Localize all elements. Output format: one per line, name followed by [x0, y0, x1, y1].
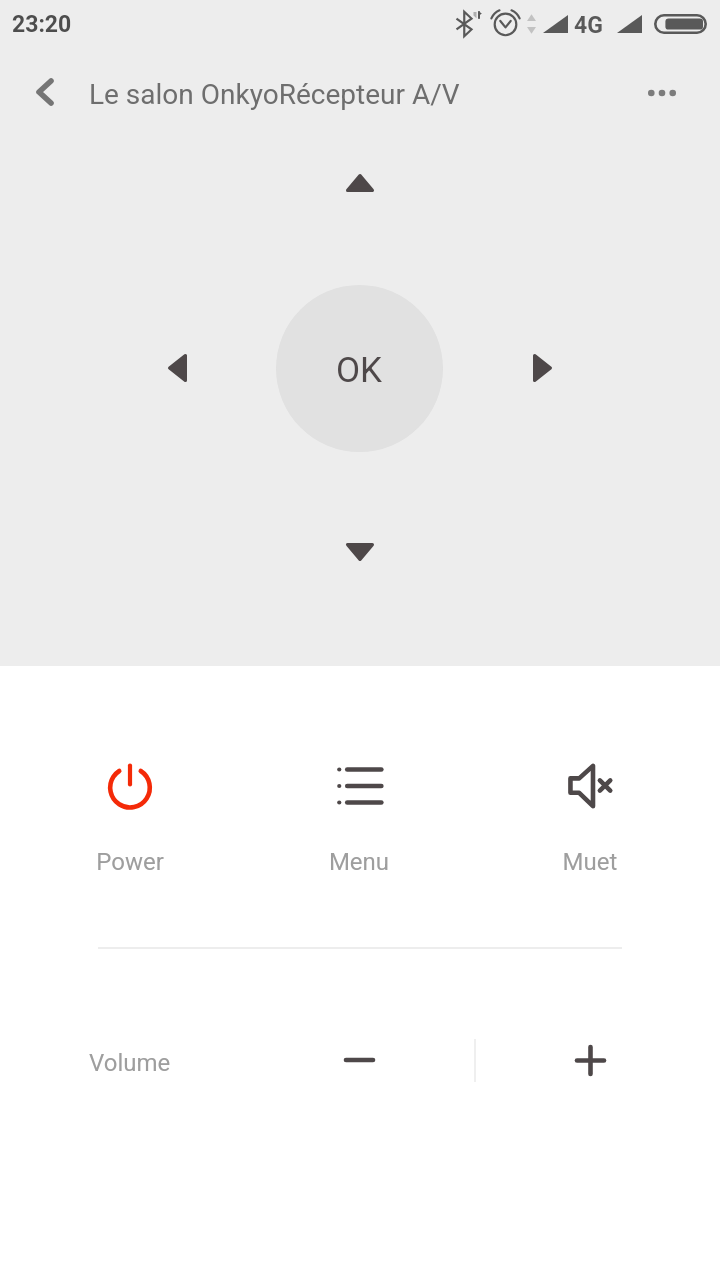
staticText: Le salon OnkyoRécepteur A/V — [89, 78, 460, 111]
button[interactable]: Volume down — [299, 1020, 419, 1100]
button[interactable]: Power — [60, 748, 200, 888]
button[interactable]: Left — [138, 328, 217, 408]
button[interactable]: Muet — [520, 748, 660, 888]
button[interactable]: OK — [276, 285, 443, 452]
button[interactable]: Up — [320, 144, 400, 222]
staticText: OK — [336, 350, 383, 391]
staticText: 4G — [574, 12, 603, 39]
button[interactable]: More options — [628, 59, 696, 127]
button[interactable]: Down — [320, 513, 400, 591]
button[interactable]: Back — [12, 59, 78, 125]
staticText: Menu — [289, 848, 429, 876]
staticText: 23:20 — [12, 11, 72, 38]
button[interactable]: Menu — [289, 748, 429, 888]
staticText: Muet — [520, 848, 660, 876]
button[interactable]: Volume up — [530, 1020, 650, 1100]
staticText: Power — [60, 848, 200, 876]
staticText: Volume — [89, 1049, 171, 1077]
button[interactable]: Right — [503, 328, 582, 408]
